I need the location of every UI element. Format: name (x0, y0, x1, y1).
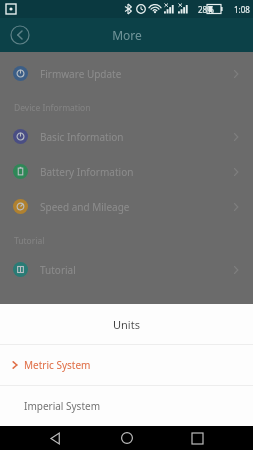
button[interactable]: Recents (182, 426, 212, 450)
button[interactable]: Imperial System (0, 386, 253, 426)
button[interactable]: Battery Information (0, 154, 253, 189)
staticText: Units (113, 317, 140, 332)
button[interactable]: Basic Information (0, 119, 253, 154)
staticText: Firmware Update (40, 67, 232, 81)
button[interactable]: Speed and Mileage (0, 189, 253, 224)
staticText: More (112, 27, 142, 43)
staticText: Device Information (14, 102, 91, 114)
button[interactable]: Firmware Update (0, 56, 253, 91)
staticText: Tutorial (40, 263, 232, 277)
staticText: 28% (198, 4, 214, 15)
button[interactable]: Metric System (0, 345, 253, 385)
staticText: Tutorial (14, 235, 45, 247)
staticText: Imperial System (24, 399, 101, 413)
staticText: Metric System (24, 358, 91, 372)
staticText: Speed and Mileage (40, 200, 232, 214)
staticText: Battery Information (40, 165, 232, 179)
button[interactable]: Tutorial (0, 252, 253, 287)
staticText: Basic Information (40, 130, 232, 144)
button[interactable]: Back (41, 426, 71, 450)
staticText: 1:08 (234, 4, 250, 15)
button[interactable]: Back (8, 23, 32, 47)
button[interactable]: Home (112, 426, 142, 450)
